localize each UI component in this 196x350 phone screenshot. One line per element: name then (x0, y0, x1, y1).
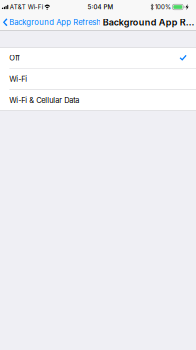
staticText: 5:04 PM (87, 3, 113, 11)
staticText: Wi-Fi (9, 74, 27, 83)
staticText: 100% (155, 3, 171, 11)
staticText: Background App Refresh (9, 18, 101, 27)
staticText: Background App R… (103, 17, 195, 28)
button[interactable]: Wi-Fi (0, 69, 196, 89)
staticText: Wi-Fi & Cellular Data (9, 96, 79, 105)
button[interactable]: Wi-Fi & Cellular Data (0, 90, 196, 111)
staticText: Off (9, 53, 20, 62)
button[interactable]: Background App Refresh (0, 15, 103, 30)
button[interactable]: Off (0, 47, 196, 68)
staticText: AT&T Wi-Fi (10, 3, 43, 11)
